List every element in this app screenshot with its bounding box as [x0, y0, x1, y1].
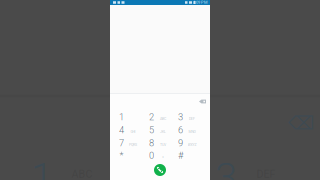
- staticText: WXYZ: [187, 143, 196, 147]
- button[interactable]: 7: [116, 137, 143, 149]
- button[interactable]: Call: [154, 164, 166, 176]
- staticText: 1: [119, 111, 124, 122]
- staticText: 4: [119, 124, 124, 135]
- button[interactable]: 0: [146, 149, 173, 161]
- staticText: 8: [149, 137, 154, 148]
- button[interactable]: *: [116, 149, 143, 161]
- button[interactable]: 8: [146, 137, 173, 149]
- staticText: #: [178, 150, 183, 161]
- button[interactable]: 6: [175, 124, 202, 136]
- staticText: TUV: [160, 143, 166, 147]
- staticText: 2: [149, 111, 154, 122]
- button[interactable]: 2: [146, 111, 173, 123]
- staticText: ABC: [160, 117, 166, 121]
- staticText: 3: [178, 111, 183, 122]
- staticText: 1: [31, 155, 53, 180]
- staticText: 9: [178, 137, 183, 148]
- button[interactable]: 3: [175, 111, 202, 123]
- staticText: ⌫: [288, 112, 314, 134]
- staticText: DEF: [189, 117, 195, 121]
- button[interactable]: 5: [146, 124, 173, 136]
- staticText: 5: [149, 124, 154, 135]
- staticText: PQRS: [129, 143, 137, 147]
- staticText: +: [162, 155, 164, 159]
- staticText: 6: [178, 124, 183, 135]
- button[interactable]: 4: [116, 124, 143, 136]
- staticText: MNO: [188, 130, 195, 134]
- staticText: JKL: [160, 130, 166, 134]
- button[interactable]: #: [175, 149, 202, 161]
- button[interactable]: 9: [175, 137, 202, 149]
- staticText: GHI: [130, 130, 135, 134]
- staticText: 4:09 PM: [193, 0, 207, 5]
- staticText: 3: [215, 155, 237, 180]
- staticText: *: [119, 150, 123, 161]
- button[interactable]: Backspace: [197, 97, 208, 106]
- staticText: 7: [119, 137, 124, 148]
- staticText: 0: [149, 150, 154, 161]
- button[interactable]: 1: [116, 111, 143, 123]
